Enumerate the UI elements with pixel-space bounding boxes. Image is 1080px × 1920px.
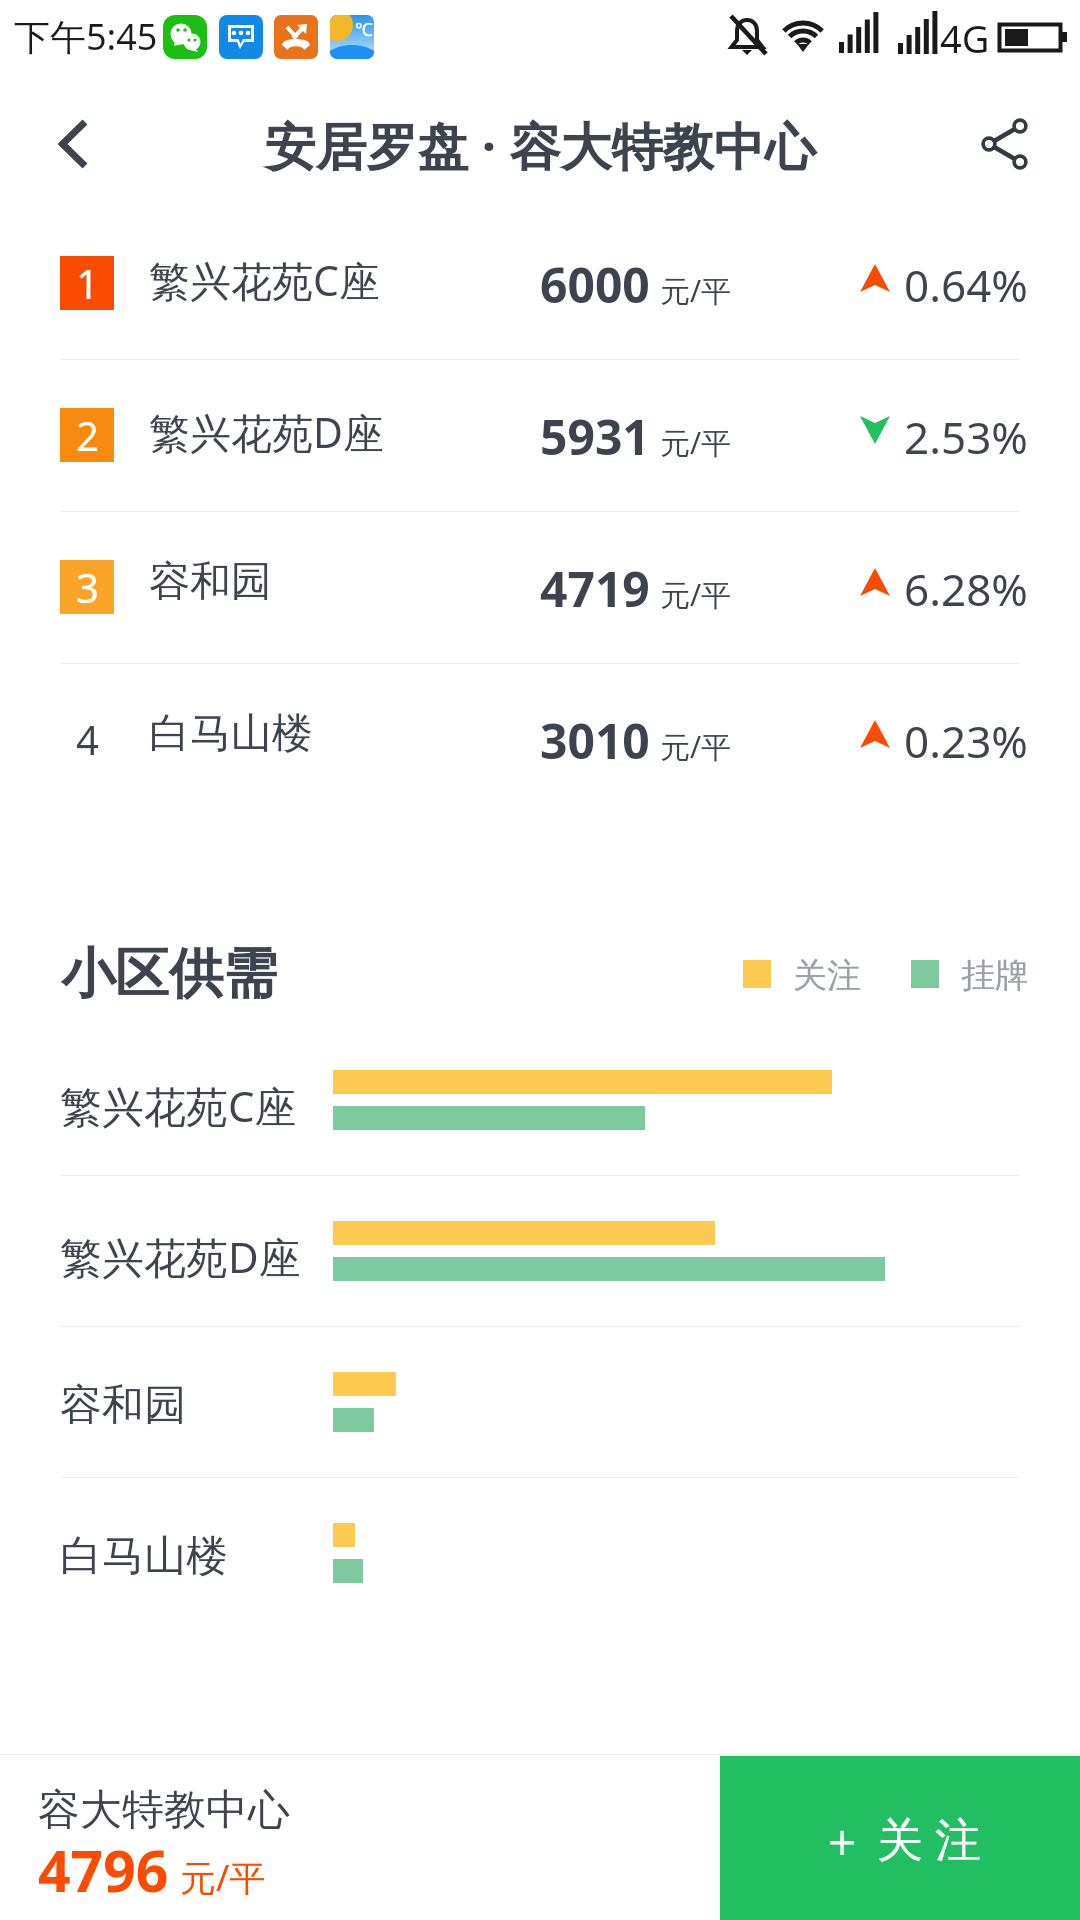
button[interactable]: 白马山楼 [0,1477,1080,1628]
button[interactable]: 容和园 [0,1326,1080,1477]
staticText: 容和园 [149,556,272,608]
staticText: 4796 [38,1831,169,1909]
staticText: 2 [76,408,99,462]
button[interactable]: 挂牌 [911,952,1019,996]
staticText: 5931 [540,404,650,469]
button[interactable]: 1 [0,207,1080,359]
staticText: 4G [940,12,990,64]
button[interactable]: 繁兴花苑D座 [0,1175,1080,1326]
button[interactable]: 3 [0,511,1080,663]
staticText: 关注 [793,954,861,997]
staticText: 容和园 [60,1379,186,1432]
staticText: 小区供需 [61,940,277,1008]
staticText: 6.28% [904,559,1028,619]
staticText: 繁兴花苑D座 [149,404,384,460]
staticText: 下午5:45 [14,12,158,61]
button[interactable]: 繁兴花苑C座 [0,1024,1080,1175]
button[interactable]: 关注 [743,952,851,996]
staticText: 元/平 [660,270,732,311]
staticText: 元/平 [660,422,732,463]
staticText: 6000 [540,252,650,317]
staticText: 元/平 [660,726,732,767]
staticText: 3 [76,560,99,614]
staticText: 4 [76,712,99,766]
button[interactable]: ＋ 关 注 [720,1756,1080,1920]
staticText: 0.23% [904,711,1028,771]
staticText: 挂牌 [961,954,1029,997]
staticText: 元/平 [180,1853,266,1902]
staticText: ＋ 关 注 [819,1807,981,1870]
staticText: 容大特教中心 [38,1784,290,1837]
staticText: 2.53% [904,407,1028,467]
button[interactable]: 4 [0,663,1080,815]
staticText: 元/平 [660,574,732,615]
button[interactable]: Back [24,104,104,184]
staticText: 0.64% [904,255,1028,315]
staticText: 繁兴花苑D座 [60,1228,301,1285]
staticText: 白马山楼 [149,708,313,760]
staticText: 繁兴花苑C座 [60,1077,297,1134]
staticText: 繁兴花苑C座 [149,252,380,308]
staticText: ℃ [355,17,373,42]
button[interactable]: 2 [0,359,1080,511]
staticText: 白马山楼 [60,1530,228,1583]
button[interactable]: Share [965,104,1045,184]
staticText: 4719 [540,556,650,621]
staticText: 安居罗盘 · 容大特教中心 [0,110,1080,180]
staticText: 1 [76,256,99,310]
staticText: 3010 [540,708,650,773]
